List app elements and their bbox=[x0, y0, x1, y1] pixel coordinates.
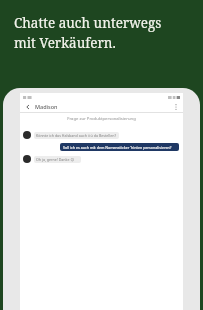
button[interactable]: Mehr Optionen bbox=[171, 102, 180, 111]
button[interactable]: Zurück bbox=[23, 102, 32, 111]
button[interactable]: Könnte ich das Halsband auch ii ü da Bes… bbox=[23, 131, 177, 139]
staticText: Madison bbox=[35, 103, 58, 110]
button[interactable]: Soll ich es auch mit dem Namensticker 'h… bbox=[60, 143, 179, 151]
staticText: Könnte ich das Halsband auch ii ü da Bes… bbox=[36, 133, 116, 138]
staticText: Frage zur Produktpersonalisierung bbox=[67, 116, 136, 122]
staticText: Soll ich es auch mit dem Namensticker 'h… bbox=[63, 145, 172, 150]
staticText: Oh ja, gerne! Danke 😊 bbox=[36, 157, 75, 162]
button[interactable]: Oh ja, gerne! Danke 😊 bbox=[23, 155, 177, 163]
staticText: mit Verkäufern. bbox=[14, 34, 116, 52]
staticText: Chatte auch unterwegs bbox=[14, 14, 162, 32]
